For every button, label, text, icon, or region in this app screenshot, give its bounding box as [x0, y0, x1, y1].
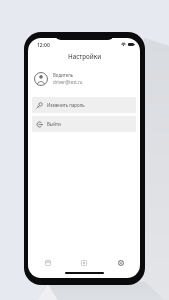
staticText: Изменить пароль [47, 102, 85, 108]
staticText: 12:00 [37, 42, 50, 49]
button[interactable]: Orders [31, 255, 65, 271]
button[interactable]: Выйти [32, 116, 136, 132]
button[interactable]: Изменить пароль [32, 97, 136, 113]
button[interactable]: Routes [67, 255, 101, 271]
staticText: Выйти [47, 121, 61, 127]
staticText: Водитель [53, 72, 74, 78]
button[interactable]: Settings [104, 255, 138, 271]
button[interactable]: Водитель [28, 69, 140, 88]
staticText: driver@test.ru [53, 79, 83, 85]
staticText: Настройки [68, 52, 102, 60]
